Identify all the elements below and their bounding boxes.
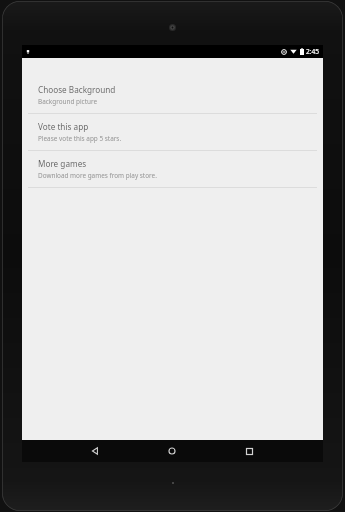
- staticText: More games: [38, 158, 87, 169]
- button[interactable]: More games: [22, 151, 323, 187]
- button[interactable]: Home: [159, 440, 185, 462]
- staticText: 2:45: [306, 47, 320, 56]
- staticText: Vote this app: [38, 121, 89, 132]
- staticText: Background picture: [38, 97, 98, 106]
- staticText: Please vote this app 5 stars.: [38, 134, 122, 143]
- button[interactable]: Vote this app: [22, 114, 323, 150]
- staticText: Download more games from play store.: [38, 171, 157, 180]
- button[interactable]: Choose Background: [22, 77, 323, 113]
- button[interactable]: Back: [82, 440, 108, 462]
- button[interactable]: Recent apps: [236, 440, 262, 462]
- staticText: Choose Background: [38, 84, 116, 95]
